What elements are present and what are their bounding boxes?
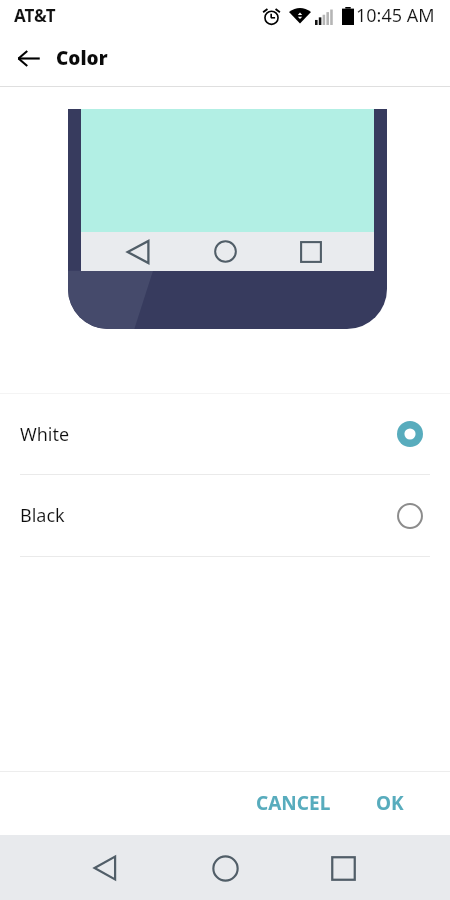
button[interactable]: Recents [328, 853, 358, 883]
staticText: OK [376, 790, 404, 816]
button[interactable]: White [0, 394, 450, 474]
staticText: Color [56, 45, 108, 71]
button[interactable]: Back [91, 853, 121, 883]
staticText: 10:45 AM [356, 3, 435, 28]
staticText: CANCEL [256, 790, 331, 816]
staticText: Black [20, 503, 65, 528]
button[interactable]: Home [210, 853, 240, 883]
staticText: AT&T [14, 4, 56, 27]
button[interactable]: Black [0, 475, 450, 556]
button[interactable]: Back [0, 30, 56, 86]
button[interactable]: CANCEL [240, 778, 347, 828]
button[interactable]: OK [360, 778, 420, 828]
staticText: White [20, 422, 70, 447]
